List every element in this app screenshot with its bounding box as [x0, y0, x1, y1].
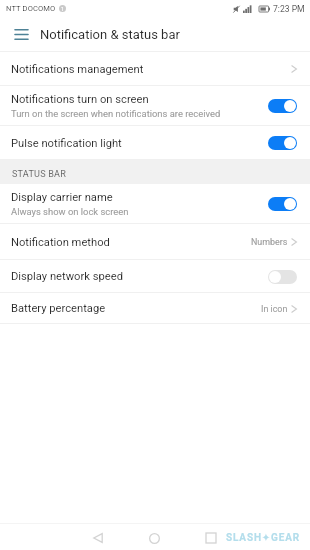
button[interactable]: Menu: [4, 17, 39, 52]
button[interactable]: Recents: [198, 525, 224, 550]
staticText: Pulse notification light: [11, 137, 122, 150]
staticText: Notifications turn on screen: [11, 93, 149, 106]
button[interactable]: Display carrier name: [0, 184, 310, 224]
staticText: STATUS BAR: [12, 169, 67, 180]
staticText: 7:23 PM: [273, 4, 305, 14]
staticText: Display carrier name: [11, 191, 113, 204]
staticText: Battery percentage: [11, 302, 106, 315]
button[interactable]: Home: [141, 525, 167, 550]
button[interactable]: Notification method: [0, 224, 310, 260]
staticText: Notifications management: [11, 63, 144, 76]
button[interactable]: Enabled: [268, 197, 297, 211]
button[interactable]: Back: [85, 525, 111, 550]
button[interactable]: Display network speed: [0, 260, 310, 293]
staticText: Notification & status bar: [40, 27, 180, 42]
button[interactable]: Enabled: [268, 99, 297, 113]
staticText: Notification method: [11, 236, 110, 249]
staticText: SLASH✦GEAR: [226, 532, 301, 544]
staticText: Always show on lock screen: [11, 206, 129, 217]
button[interactable]: Disabled: [268, 270, 297, 284]
staticText: Display network speed: [11, 270, 123, 283]
staticText: NTT DOCOMO: [6, 4, 56, 13]
staticText: In icon: [261, 304, 288, 314]
staticText: Turn on the screen when notifications ar…: [11, 108, 221, 119]
button[interactable]: Battery percentage: [0, 293, 310, 324]
staticText: Numbers: [251, 237, 288, 247]
button[interactable]: Notifications management: [0, 52, 310, 86]
button[interactable]: Notifications turn on screen: [0, 86, 310, 126]
button[interactable]: Enabled: [268, 136, 297, 150]
button[interactable]: Pulse notification light: [0, 126, 310, 160]
staticText: 1: [61, 6, 65, 12]
